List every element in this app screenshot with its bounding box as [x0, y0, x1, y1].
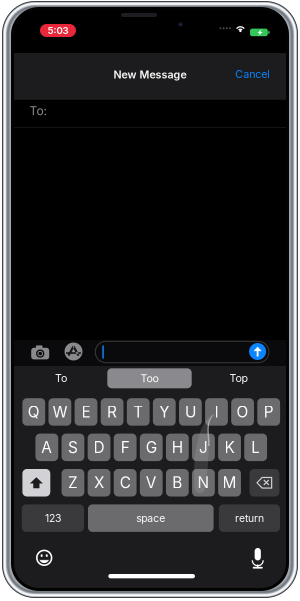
button[interactable]: O [231, 398, 254, 426]
staticText: P [264, 403, 274, 421]
staticText: Q [28, 403, 40, 421]
button[interactable]: C [114, 469, 137, 496]
button[interactable]: Cancel [230, 62, 276, 86]
button[interactable]: I [205, 398, 228, 426]
staticText: L [251, 438, 260, 457]
button[interactable]: M [218, 469, 241, 496]
button[interactable]: K [218, 434, 241, 461]
button[interactable]: E [75, 398, 97, 426]
button[interactable]: F [114, 434, 137, 461]
staticText: I [214, 403, 218, 421]
button[interactable]: B [166, 469, 189, 496]
staticText: U [185, 403, 196, 421]
button[interactable]: Send [249, 343, 266, 360]
staticText: T [133, 403, 143, 421]
staticText: S [68, 438, 78, 457]
staticText: R [107, 403, 117, 421]
button[interactable]: V [140, 469, 163, 496]
staticText: To: [29, 104, 46, 118]
button[interactable]: Apps [64, 342, 82, 360]
button[interactable]: Top [196, 367, 282, 389]
staticText: A [41, 438, 52, 457]
button[interactable]: 123 [22, 504, 84, 532]
button[interactable]: Z [61, 469, 84, 496]
button[interactable]: L [244, 434, 267, 461]
button[interactable]: Y [153, 398, 176, 426]
staticText: space [136, 512, 165, 524]
button[interactable]: W [48, 398, 71, 426]
staticText: O [237, 403, 249, 421]
button[interactable]: G [140, 434, 163, 461]
staticText: Cancel [235, 67, 270, 80]
button[interactable]: T [127, 398, 150, 426]
staticText: New Message [113, 68, 186, 81]
staticText: M [223, 473, 237, 492]
button[interactable]: S [62, 434, 84, 461]
button[interactable]: H [166, 434, 189, 461]
button[interactable]: Dictate [252, 548, 264, 567]
staticText: 123 [45, 512, 61, 524]
button[interactable]: Q [22, 398, 45, 426]
button[interactable]: A [35, 434, 58, 461]
staticText: N [197, 473, 209, 492]
staticText: Y [159, 403, 169, 421]
button[interactable]: D [88, 434, 110, 461]
staticText: return [235, 512, 264, 524]
button[interactable]: U [179, 398, 202, 426]
button[interactable]: J [192, 434, 215, 461]
staticText: Z [68, 473, 78, 492]
staticText: To [55, 371, 67, 384]
button[interactable]: N [192, 469, 215, 496]
staticText: B [172, 473, 182, 492]
staticText: G [146, 438, 157, 457]
button[interactable]: X [88, 469, 110, 496]
button[interactable]: To [18, 367, 104, 389]
button[interactable]: P [257, 398, 280, 426]
staticText: 5:03 [47, 25, 68, 36]
staticText: Too [140, 372, 158, 385]
button[interactable]: Emoji [36, 550, 52, 566]
button[interactable]: return [219, 504, 280, 532]
staticText: H [172, 438, 183, 457]
button[interactable]: Camera [31, 346, 49, 359]
button[interactable]: space [88, 504, 214, 532]
staticText: W [52, 403, 67, 421]
button[interactable]: R [101, 398, 123, 426]
staticText: V [146, 473, 157, 492]
button[interactable]: Too [107, 368, 192, 388]
button[interactable]: Shift [22, 469, 50, 496]
staticText: J [199, 438, 208, 457]
staticText: Top [229, 371, 248, 384]
staticText: E [81, 403, 90, 421]
staticText: C [120, 473, 131, 492]
staticText: D [94, 438, 105, 457]
staticText: K [225, 438, 235, 457]
staticText: F [121, 438, 130, 457]
button[interactable]: Delete [249, 469, 279, 496]
staticText: X [94, 473, 104, 492]
